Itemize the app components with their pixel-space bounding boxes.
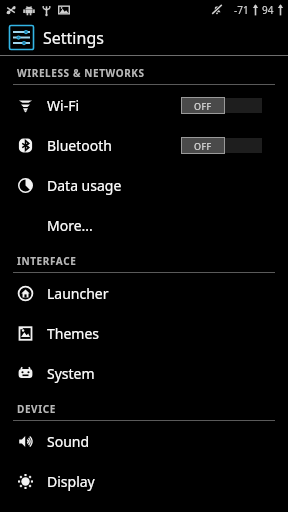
staticText: 94 [262, 3, 274, 17]
staticText: Display [47, 472, 262, 491]
button[interactable]: More... [0, 205, 288, 245]
staticText: More... [47, 216, 262, 235]
staticText: Bluetooth [47, 136, 181, 155]
button[interactable]: Bluetooth [0, 125, 288, 165]
staticText: System [47, 364, 262, 383]
staticText: -71 [234, 3, 249, 17]
staticText: OFF [194, 140, 212, 152]
button[interactable]: Launcher [0, 273, 288, 313]
staticText: INTERFACE [17, 254, 77, 268]
button[interactable]: Wi-Fi [0, 85, 288, 125]
staticText: Wi-Fi [47, 96, 181, 115]
staticText: DEVICE [17, 402, 56, 416]
staticText: WIRELESS & NETWORKS [17, 66, 145, 80]
button[interactable]: Data usage [0, 165, 288, 205]
button[interactable]: Display [0, 461, 288, 501]
staticText: Sound [47, 432, 262, 451]
staticText: Launcher [47, 284, 262, 303]
button[interactable]: System [0, 353, 288, 393]
staticText: Settings [43, 27, 104, 49]
staticText: Themes [47, 324, 262, 343]
button[interactable]: Themes [0, 313, 288, 353]
button[interactable]: Sound [0, 421, 288, 461]
staticText: OFF [194, 100, 212, 112]
staticText: Data usage [47, 176, 262, 195]
